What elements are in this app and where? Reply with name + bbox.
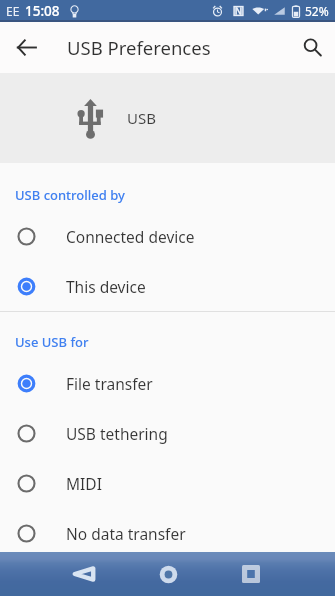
button[interactable]: MIDI — [0, 458, 335, 508]
staticText: No data transfer — [66, 523, 186, 544]
button[interactable]: No data transfer — [0, 508, 335, 558]
button[interactable]: Back — [62, 552, 106, 596]
button[interactable]: This device — [0, 261, 335, 311]
staticText: File transfer — [66, 373, 153, 394]
staticText: EE — [6, 3, 20, 19]
staticText: MIDI — [66, 473, 102, 494]
staticText: USB controlled by — [15, 186, 125, 204]
staticText: This device — [66, 276, 146, 297]
staticText: 52% — [305, 3, 329, 19]
staticText: USB — [127, 108, 156, 128]
button[interactable]: Navigate up — [0, 22, 52, 73]
staticText: Use USB for — [15, 333, 89, 351]
button[interactable]: Home — [146, 552, 190, 596]
staticText: Connected device — [66, 226, 195, 247]
staticText: USB Preferences — [67, 35, 211, 60]
staticText: 15:08 — [25, 2, 60, 20]
button[interactable]: File transfer — [0, 358, 335, 408]
button[interactable]: Search — [289, 22, 335, 73]
staticText: USB tethering — [66, 423, 168, 444]
button[interactable]: Connected device — [0, 211, 335, 261]
button[interactable]: USB tethering — [0, 408, 335, 458]
button[interactable]: Recent apps — [229, 552, 273, 596]
